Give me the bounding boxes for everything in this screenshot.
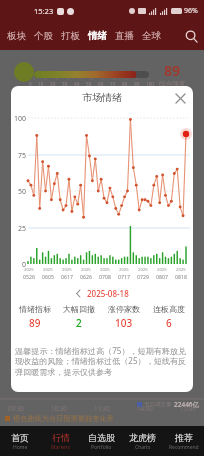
staticText: 10: [38, 81, 44, 87]
staticText: 0626: [80, 273, 92, 280]
staticText: 2025: [157, 267, 167, 273]
staticText: 22446亿: [174, 400, 200, 409]
button[interactable]: 板块: [3, 27, 30, 45]
staticText: 40: [74, 81, 80, 87]
staticText: 0: [29, 81, 32, 87]
staticText: 2025: [81, 267, 91, 273]
staticText: 龙虎榜: [129, 432, 156, 443]
staticText: 89: [29, 316, 41, 330]
staticText: 60: [98, 81, 104, 87]
staticText: 2025-08-18: [87, 288, 129, 299]
staticText: Portfolio: [91, 444, 112, 451]
staticText: 25: [11, 224, 26, 234]
staticText: 打板: [61, 30, 80, 42]
staticText: 09:30: [8, 404, 24, 412]
staticText: 大幅回撤: [63, 304, 95, 314]
button[interactable]: 打板: [57, 27, 84, 45]
staticText: 15:23: [34, 6, 54, 16]
button[interactable]: 2025-08-18: [71, 288, 133, 299]
staticText: 90: [134, 81, 140, 87]
button[interactable]: 情绪: [84, 27, 111, 45]
staticText: 2025: [138, 267, 148, 273]
button[interactable]: 个股: [30, 27, 57, 45]
button[interactable]: Close: [171, 89, 189, 107]
staticText: 涨停家数: [108, 304, 140, 314]
staticText: 0: [11, 260, 26, 270]
staticText: 橙色曲线为当日预测量能变化率: [13, 414, 114, 423]
staticText: 2025: [119, 267, 129, 273]
staticText: 89: [164, 61, 181, 80]
staticText: 6: [166, 316, 172, 330]
staticText: 直播: [115, 30, 134, 42]
staticText: 100: [146, 81, 154, 87]
button[interactable]: Search: [182, 27, 200, 45]
staticText: 2025: [43, 267, 53, 273]
button[interactable]: 全球: [138, 27, 165, 45]
staticText: 0708: [99, 273, 111, 280]
staticText: 0818: [175, 273, 187, 280]
staticText: 2025: [62, 267, 72, 273]
button[interactable]: 自选股: [81, 426, 122, 456]
staticText: 103: [115, 316, 133, 330]
staticText: Home: [13, 444, 28, 451]
staticText: 全球: [142, 30, 161, 42]
staticText: 连板高度: [153, 304, 185, 314]
staticText: 当日成交量: [144, 401, 172, 408]
staticText: 行情: [52, 432, 70, 443]
staticText: 0807: [156, 273, 168, 280]
staticText: 0729: [137, 273, 149, 280]
button[interactable]: 直播: [111, 27, 138, 45]
staticText: 15:00: [180, 404, 196, 412]
staticText: Recommend: [169, 444, 199, 451]
staticText: 70: [110, 81, 116, 87]
staticText: 2025: [176, 267, 186, 273]
staticText: 20: [50, 81, 56, 87]
staticText: 50: [86, 81, 92, 87]
staticText: 10:30: [51, 404, 67, 412]
staticText: 2025: [24, 267, 34, 273]
staticText: 0526: [23, 273, 35, 280]
staticText: 市场情绪: [82, 91, 122, 104]
staticText: 情绪: [88, 30, 107, 42]
staticText: 个股: [34, 30, 53, 42]
staticText: 0617: [61, 273, 73, 280]
staticText: 2025: [100, 267, 110, 273]
staticText: 75: [11, 151, 26, 161]
staticText: 11:30: [94, 404, 110, 412]
staticText: 50: [11, 187, 26, 197]
staticText: 0605: [42, 273, 54, 280]
button[interactable]: 首页: [0, 426, 40, 456]
staticText: 80: [122, 81, 128, 87]
staticText: 14:00: [137, 404, 153, 412]
staticText: 0717: [118, 273, 130, 280]
staticText: 情绪指标: [19, 304, 51, 314]
button[interactable]: 龙虎榜: [122, 426, 163, 456]
staticText: 综合强度: [159, 80, 186, 88]
staticText: 30: [62, 81, 68, 87]
staticText: 96%: [184, 6, 198, 16]
staticText: 100: [11, 114, 26, 124]
button[interactable]: 行情: [40, 426, 81, 456]
staticText: 2: [76, 316, 82, 330]
staticText: 推荐: [175, 432, 193, 443]
staticText: Charts: [135, 444, 151, 451]
staticText: 首页: [11, 432, 29, 443]
staticText: Markets: [51, 444, 71, 451]
button[interactable]: 推荐: [163, 426, 204, 456]
staticText: 自选股: [88, 432, 115, 443]
staticText: 板块: [7, 30, 26, 42]
staticText: 温馨提示：情绪指标过高（75），短期有释放兑现收益的风险；情绪指标过低（25），…: [15, 345, 189, 377]
